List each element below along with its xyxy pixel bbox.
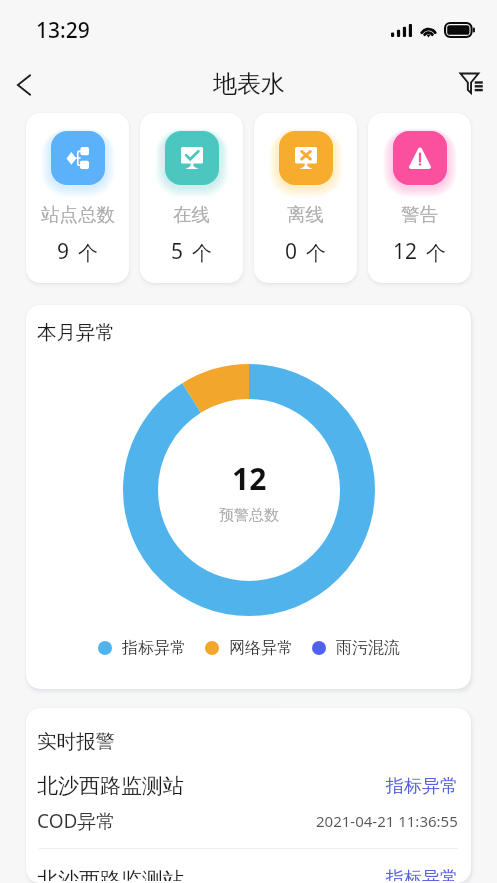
- staticText: 站点总数: [41, 203, 115, 226]
- staticText: 北沙西路监测站: [37, 773, 184, 799]
- staticText: 5: [171, 237, 184, 266]
- staticText: 警告: [401, 203, 438, 226]
- staticText: 在线: [173, 203, 210, 226]
- button[interactable]: 北沙西路监测站: [26, 755, 471, 848]
- staticText: 个: [306, 241, 326, 266]
- staticText: 指标异常: [122, 638, 186, 658]
- staticText: 0: [285, 237, 298, 266]
- button[interactable]: 在线: [140, 113, 243, 283]
- button[interactable]: 站点总数: [26, 113, 129, 283]
- button[interactable]: 警告: [368, 113, 471, 283]
- button[interactable]: Back: [2, 63, 46, 107]
- staticText: 个: [426, 241, 446, 266]
- staticText: 9: [57, 237, 70, 266]
- staticText: 个: [192, 241, 212, 266]
- button[interactable]: 北沙西路监测站: [26, 849, 471, 883]
- staticText: 指标异常: [386, 775, 458, 798]
- button[interactable]: 离线: [254, 113, 357, 283]
- staticText: 实时报警: [37, 729, 115, 754]
- staticText: 本月异常: [37, 320, 115, 345]
- staticText: 2021-04-21 11:36:55: [316, 811, 458, 831]
- staticText: COD异常: [37, 808, 116, 834]
- staticText: 雨污混流: [336, 638, 400, 658]
- staticText: 离线: [287, 203, 324, 226]
- button[interactable]: Filter: [449, 60, 493, 104]
- staticText: 网络异常: [229, 638, 293, 658]
- staticText: 地表水: [213, 69, 285, 99]
- staticText: 预警总数: [219, 506, 279, 525]
- staticText: 个: [78, 241, 98, 266]
- staticText: 北沙西路监测站: [37, 867, 184, 881]
- staticText: 12: [232, 458, 267, 499]
- staticText: 12: [393, 237, 418, 266]
- staticText: 指标异常: [386, 867, 458, 881]
- staticText: 13:29: [36, 16, 90, 45]
